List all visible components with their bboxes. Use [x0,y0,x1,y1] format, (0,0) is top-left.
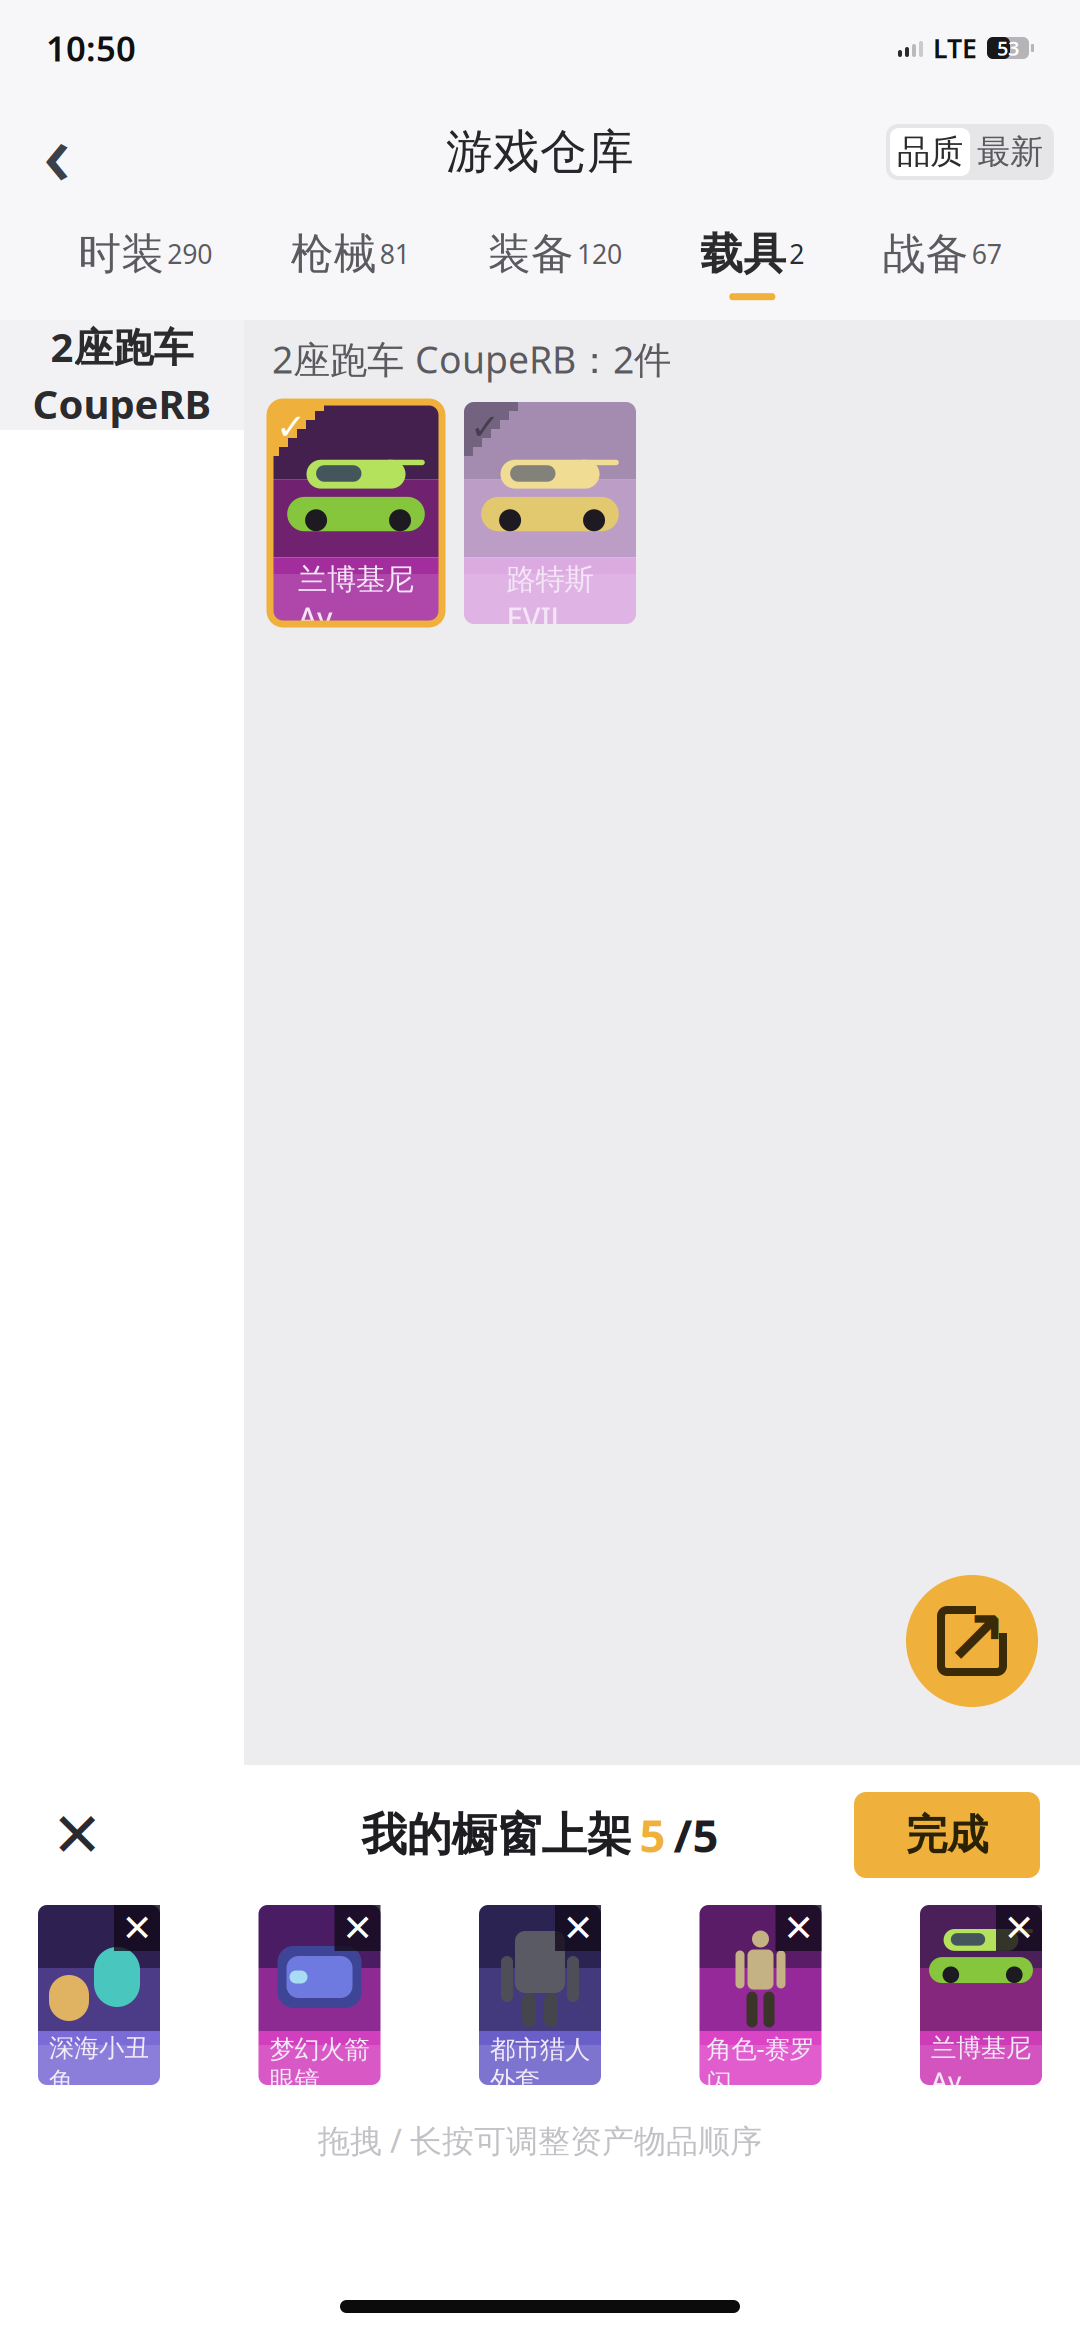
button[interactable]: Remove 兰博基尼 Av… [996,1905,1042,1951]
button[interactable]: Share showcase [906,1575,1038,1707]
button[interactable]: 时装 [64,224,226,304]
staticText: 战备 [883,228,969,280]
staticText: ✕ [783,1907,814,1949]
staticText: 拖拽 / 长按可调整资产物品顺序 [318,2119,762,2161]
staticText: 67 [972,236,1002,271]
staticText: ✕ [121,1907,152,1949]
staticText: ✓ [470,406,500,447]
staticText: ↗ [944,1596,1007,1680]
staticText: 5 [639,1805,665,1865]
button[interactable]: Remove 都市猎人外套 [555,1905,601,1951]
button[interactable]: Back [26,121,88,183]
staticText: 品质 [897,131,963,172]
button[interactable]: 2座跑车 [0,320,244,430]
staticText: LTE [933,30,977,66]
button[interactable]: Remove 梦幻火箭眼镜 [334,1905,380,1951]
staticText: CoupeRB [32,377,211,430]
staticText: ✕ [562,1907,593,1949]
button[interactable]: Remove 深海小丑鱼… [114,1905,160,1951]
button[interactable]: 完成 [854,1792,1040,1878]
staticText: 路特斯 EVIJ… [506,561,593,636]
button[interactable]: 载具 [686,224,818,304]
staticText: 深海小丑鱼… [49,2033,149,2097]
staticText: 梦幻火箭眼镜 [269,2034,369,2096]
staticText: 游戏仓库 [446,123,634,181]
button[interactable]: 装备 [474,224,636,304]
button[interactable]: 枪械 [277,224,424,304]
button[interactable]: 最新 [970,128,1050,176]
button[interactable]: 兰博基尼 Av… [266,398,446,628]
staticText: 枪械 [291,228,377,280]
staticText: 都市猎人外套 [490,2034,590,2096]
button[interactable]: Remove 角色-赛罗闪… [775,1905,821,1951]
staticText: ✕ [1003,1907,1034,1949]
staticText: ✕ [342,1907,373,1949]
staticText: ✓ [276,406,306,447]
staticText: 2 [789,236,804,271]
staticText: 完成 [906,1810,988,1860]
staticText: 兰博基尼 Av… [298,561,414,636]
staticText: 时装 [78,228,164,280]
staticText: 载具 [700,228,786,280]
staticText: ‹ [43,95,71,209]
staticText: 角色-赛罗闪… [706,2031,814,2099]
staticText: 我的橱窗上架 [361,1807,631,1863]
button[interactable]: 战备 [869,224,1016,304]
staticText: /5 [673,1805,718,1865]
staticText: 最新 [977,131,1043,172]
staticText: ✕ [51,1800,102,1870]
staticText: 290 [167,236,212,271]
staticText: 81 [380,236,410,271]
staticText: 兰博基尼 Av… [931,2033,1031,2097]
button[interactable]: 品质 [890,128,970,176]
staticText: 2座跑车 [50,320,193,373]
staticText: 2座跑车 CoupeRB：2件 [272,334,671,384]
staticText: 120 [577,236,622,271]
button[interactable]: 路特斯 EVIJ… [460,398,640,628]
staticText: 10:50 [46,25,136,71]
button[interactable]: Close [40,1798,114,1872]
staticText: 53 [997,35,1019,61]
staticText: 装备 [488,228,574,280]
